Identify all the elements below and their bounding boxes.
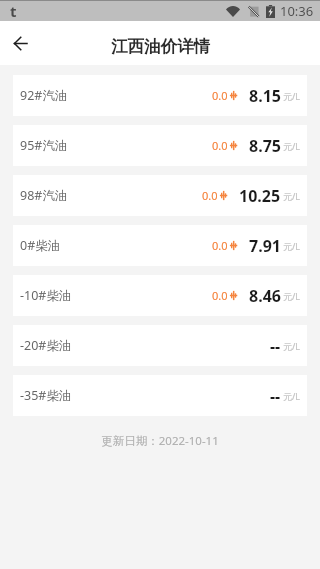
staticText: 8.46 xyxy=(249,285,281,307)
staticText: 江西油价详情 xyxy=(111,36,210,57)
staticText: 98#汽油 xyxy=(20,187,68,204)
button[interactable]: 95#汽油 xyxy=(13,125,307,166)
button[interactable]: 98#汽油 xyxy=(13,175,307,216)
staticText: 元/L xyxy=(283,290,301,302)
staticText: 更新日期：2022-10-11 xyxy=(0,433,320,449)
staticText: 10:36 xyxy=(280,2,314,20)
staticText: 元/L xyxy=(283,240,301,252)
staticText: 8.15 xyxy=(249,85,281,107)
staticText: -35#柴油 xyxy=(20,387,72,404)
button[interactable]: 0#柴油 xyxy=(13,225,307,266)
staticText: 元/L xyxy=(283,140,301,152)
staticText: t xyxy=(10,1,17,21)
staticText: 7.91 xyxy=(249,235,281,257)
staticText: 0.0 xyxy=(212,88,228,103)
staticText: 0.0 xyxy=(202,188,218,203)
staticText: -20#柴油 xyxy=(20,337,72,354)
staticText: -- xyxy=(270,385,281,407)
staticText: 10.25 xyxy=(239,185,281,207)
staticText: 元/L xyxy=(283,340,301,352)
button[interactable]: -35#柴油 xyxy=(13,375,307,416)
staticText: 0#柴油 xyxy=(20,237,61,254)
button[interactable]: Back xyxy=(0,21,40,65)
staticText: 元/L xyxy=(283,390,301,402)
staticText: 92#汽油 xyxy=(20,87,68,104)
staticText: 0.0 xyxy=(212,138,228,153)
button[interactable]: 92#汽油 xyxy=(13,75,307,116)
staticText: 元/L xyxy=(283,190,301,202)
staticText: -- xyxy=(270,335,281,357)
staticText: 8.75 xyxy=(249,135,281,157)
staticText: 95#汽油 xyxy=(20,137,68,154)
staticText: 0.0 xyxy=(212,288,228,303)
staticText: 元/L xyxy=(283,90,301,102)
button[interactable]: -10#柴油 xyxy=(13,275,307,316)
button[interactable]: -20#柴油 xyxy=(13,325,307,366)
staticText: 0.0 xyxy=(212,238,228,253)
staticText: -10#柴油 xyxy=(20,287,72,304)
